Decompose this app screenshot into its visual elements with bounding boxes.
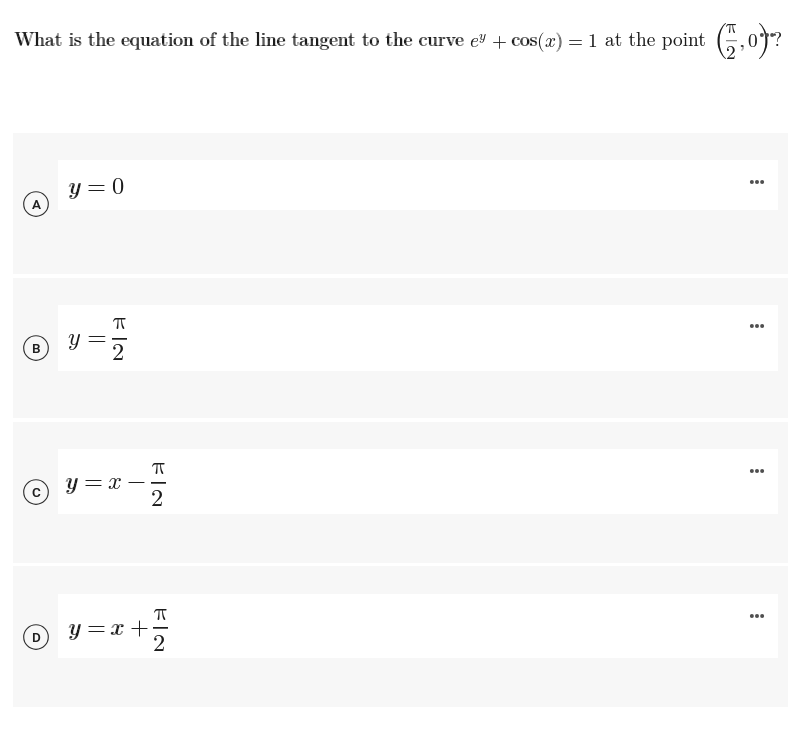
staticText: 𝑦 — [66, 469, 78, 493]
button[interactable]: Option B — [23, 335, 49, 361]
staticText: π — [113, 309, 128, 333]
staticText: 𝑒 — [470, 31, 479, 50]
staticText: π — [154, 600, 169, 624]
staticText: 2 — [112, 340, 125, 364]
button[interactable]: Option A — [23, 191, 49, 217]
staticText: + — [492, 31, 508, 50]
staticText: C — [32, 484, 41, 500]
staticText: = — [87, 174, 106, 198]
staticText: 2 — [153, 631, 166, 655]
staticText: ) — [757, 21, 772, 57]
staticText: 𝑦 — [479, 29, 486, 42]
staticText: π — [726, 17, 738, 36]
staticText: B — [32, 340, 41, 356]
staticText: = — [87, 615, 106, 639]
staticText: A — [32, 196, 41, 212]
staticText: 𝑥 — [108, 469, 122, 493]
staticText: ? — [773, 24, 783, 51]
staticText: 1 — [588, 31, 598, 50]
staticText: at the point — [605, 24, 706, 51]
staticText: 𝑦 — [68, 615, 80, 639]
staticText: + — [130, 615, 149, 639]
staticText: π — [154, 600, 169, 624]
button[interactable]: More options — [744, 605, 770, 627]
staticText: = — [87, 325, 106, 349]
button[interactable]: More options — [754, 24, 780, 46]
button[interactable]: More options — [744, 315, 770, 337]
staticText: 𝑦 — [69, 174, 81, 198]
staticText: ( — [537, 31, 545, 50]
staticText: ) — [555, 31, 563, 50]
staticText: ( — [714, 21, 729, 57]
staticText: π — [152, 454, 167, 478]
staticText: B — [32, 340, 41, 356]
staticText: − — [127, 469, 146, 493]
staticText: π — [113, 309, 128, 333]
button[interactable]: More options — [744, 171, 770, 193]
staticText: 𝑦 — [68, 174, 80, 198]
button[interactable]: Option D — [23, 624, 49, 650]
staticText: 𝑦 — [69, 615, 81, 639]
staticText: = — [568, 31, 584, 50]
staticText: What is the equation of the line tangent… — [15, 24, 465, 51]
staticText: 2 — [726, 43, 736, 62]
staticText: 𝑦 — [68, 325, 80, 349]
staticText: D — [32, 629, 41, 645]
staticText: ( — [537, 31, 545, 50]
staticText: = — [84, 469, 103, 493]
staticText: 0 — [112, 174, 125, 198]
staticText: ( — [714, 21, 729, 57]
staticText: 2 — [153, 631, 166, 655]
staticText: + — [130, 615, 149, 639]
staticText: ? — [773, 24, 783, 51]
staticText: 2 — [112, 340, 125, 364]
button[interactable] — [13, 278, 788, 418]
staticText: + — [492, 31, 508, 50]
staticText: ) — [757, 21, 772, 57]
staticText: cos — [511, 24, 537, 51]
staticText: 𝑥 — [111, 615, 125, 639]
button[interactable]: More options — [744, 460, 770, 482]
staticText: 1 — [588, 31, 598, 50]
button[interactable]: Option C — [23, 479, 49, 505]
button[interactable] — [13, 422, 788, 563]
staticText: 𝑥 — [108, 469, 122, 493]
staticText: C — [32, 484, 41, 500]
staticText: 𝑦 — [479, 29, 486, 42]
staticText: 0 — [748, 31, 758, 50]
staticText: 𝑒 — [470, 31, 479, 50]
staticText: π — [726, 17, 738, 36]
staticText: = — [88, 325, 107, 349]
staticText: ) — [556, 31, 564, 50]
staticText: cos — [512, 24, 538, 51]
staticText: 𝑦 — [65, 469, 77, 493]
staticText: 2 — [151, 486, 164, 510]
staticText: 0 — [112, 174, 125, 198]
staticText: , — [740, 31, 746, 50]
staticText: 𝑥 — [110, 615, 124, 639]
staticText: = — [568, 31, 584, 50]
staticText: , — [739, 31, 745, 50]
staticText: What is the equation of the line tangent… — [14, 24, 464, 51]
staticText: 0 — [748, 31, 758, 50]
button[interactable] — [13, 133, 788, 274]
staticText: = — [87, 174, 106, 198]
staticText: π — [152, 454, 167, 478]
button[interactable] — [13, 566, 788, 707]
staticText: at the point — [605, 24, 706, 51]
staticText: = — [84, 469, 103, 493]
staticText: = — [87, 615, 106, 639]
staticText: 2 — [726, 43, 736, 62]
staticText: 𝑦 — [68, 325, 80, 349]
staticText: − — [127, 469, 146, 493]
staticText: 2 — [151, 486, 164, 510]
staticText: 𝑥 — [545, 31, 557, 50]
staticText: A — [32, 196, 41, 212]
staticText: D — [32, 629, 41, 645]
staticText: 𝑥 — [545, 31, 557, 50]
